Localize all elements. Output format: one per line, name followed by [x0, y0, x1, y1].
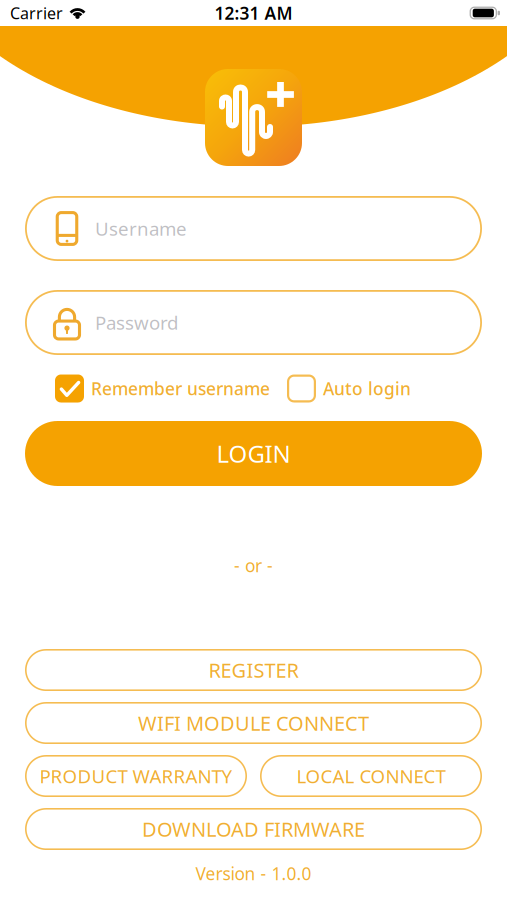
button[interactable]: LOCAL CONNECT — [260, 755, 482, 797]
button[interactable]: Auto login — [287, 374, 411, 402]
staticText: DOWNLOAD FIRMWARE — [142, 816, 365, 842]
staticText: PRODUCT WARRANTY — [39, 764, 232, 788]
staticText: LOCAL CONNECT — [296, 764, 445, 788]
button[interactable]: Remember username — [55, 374, 270, 402]
staticText: LOGIN — [216, 438, 290, 469]
staticText: 12:31 AM — [214, 1, 292, 24]
staticText: Version - 1.0.0 — [195, 862, 311, 885]
staticText: Password — [95, 310, 178, 335]
staticText: Auto login — [323, 377, 411, 400]
button[interactable]: LOGIN — [25, 421, 482, 486]
staticText: Carrier — [10, 2, 63, 24]
staticText: - or - — [234, 554, 273, 577]
button[interactable]: REGISTER — [25, 649, 482, 691]
staticText: WIFI MODULE CONNECT — [138, 710, 369, 736]
staticText: REGISTER — [208, 657, 298, 683]
staticText: Remember username — [91, 377, 270, 400]
button[interactable]: PRODUCT WARRANTY — [25, 755, 247, 797]
button[interactable]: DOWNLOAD FIRMWARE — [25, 808, 482, 850]
button[interactable]: WIFI MODULE CONNECT — [25, 702, 482, 744]
staticText: Username — [95, 216, 187, 241]
